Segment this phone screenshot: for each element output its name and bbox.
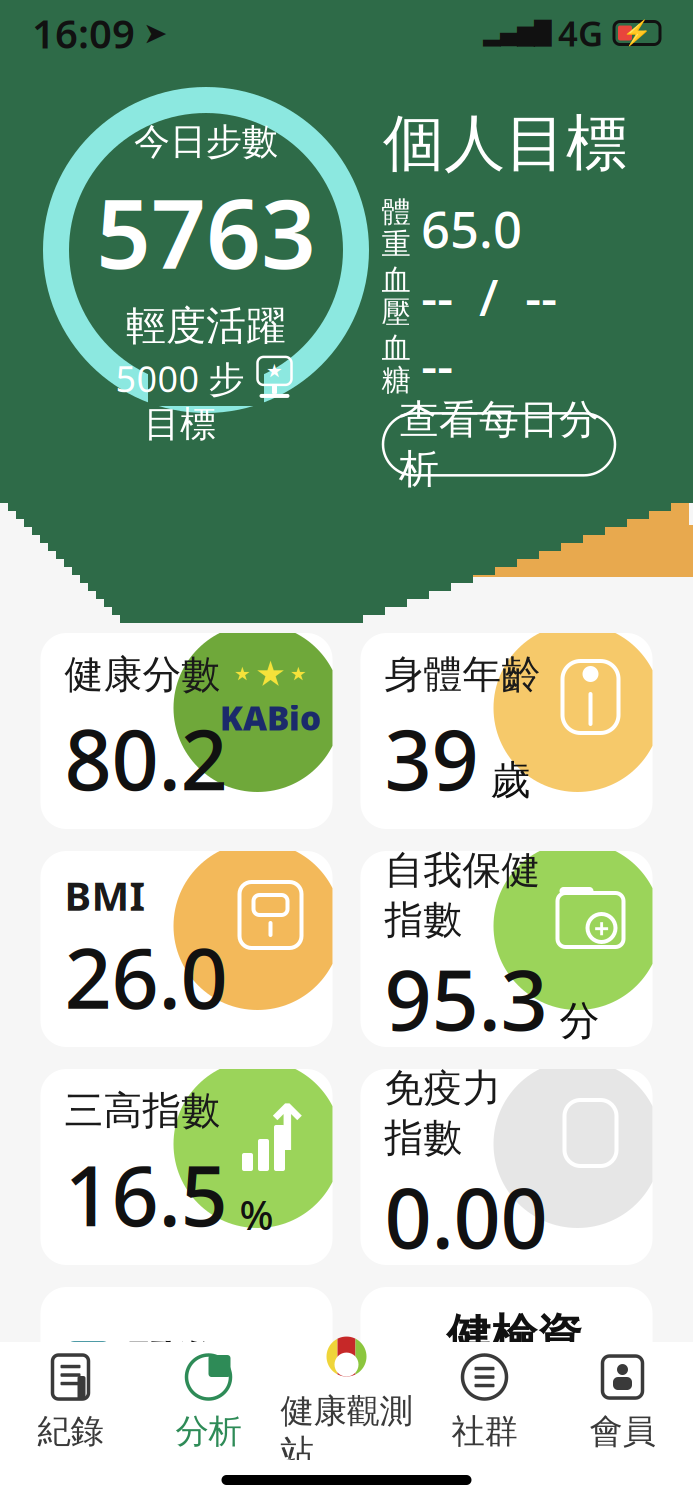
- staticText: 會員: [589, 1411, 655, 1452]
- staticText: %: [239, 1188, 273, 1241]
- staticText: 紀錄: [37, 1411, 103, 1452]
- staticText: 指數: [384, 896, 462, 944]
- staticText: 今日步數: [134, 120, 278, 164]
- staticText: 4G: [558, 10, 603, 56]
- button[interactable]: 問卷: [40, 1287, 332, 1397]
- staticText: 95.3: [384, 944, 547, 1053]
- staticText: ➤: [143, 16, 168, 50]
- staticText: 16:09: [32, 6, 135, 59]
- staticText: 糖: [381, 362, 410, 398]
- staticText: 免疫力: [384, 1065, 501, 1112]
- staticText: 80.2: [64, 703, 227, 813]
- button[interactable]: ★: [40, 633, 332, 829]
- staticText: ★: [266, 360, 283, 381]
- staticText: 16.5: [64, 1139, 227, 1249]
- staticText: 身體年齡: [384, 651, 540, 698]
- staticText: ⚡: [622, 19, 652, 47]
- button[interactable]: 會員: [553, 1342, 691, 1460]
- staticText: --: [421, 331, 453, 398]
- staticText: 0.00: [384, 1162, 547, 1271]
- button[interactable]: 免疫力: [360, 1069, 652, 1265]
- staticText: ★: [234, 663, 251, 684]
- staticText: 26.0: [64, 922, 227, 1031]
- button[interactable]: 身體年齡: [360, 633, 652, 829]
- staticText: 65.0: [421, 195, 522, 262]
- button[interactable]: +: [360, 851, 652, 1047]
- staticText: 5763: [96, 168, 316, 295]
- staticText: 三高指數: [64, 1087, 220, 1134]
- staticText: 個人目標: [383, 106, 627, 181]
- staticText: 輕度活躍: [126, 301, 286, 350]
- button[interactable]: BMI: [40, 851, 332, 1047]
- button[interactable]: 紀錄: [1, 1342, 139, 1460]
- staticText: 5000 步: [115, 354, 244, 402]
- staticText: +: [594, 910, 609, 946]
- staticText: 健檢資料: [446, 1308, 581, 1420]
- button[interactable]: 分析: [139, 1342, 277, 1460]
- staticText: 查看每日分析: [399, 395, 599, 493]
- staticText: 歲: [490, 756, 530, 805]
- staticText: 健康分數: [64, 651, 220, 698]
- button[interactable]: 查看每日分析: [383, 413, 615, 475]
- staticText: ★: [255, 654, 286, 693]
- staticText: 分析: [175, 1411, 241, 1452]
- staticText: BMI: [64, 869, 145, 922]
- button[interactable]: 健檢資料: [360, 1287, 652, 1397]
- staticText: ★: [290, 663, 307, 684]
- staticText: ↑: [260, 1092, 314, 1164]
- staticText: ›: [612, 1332, 628, 1396]
- staticText: 血: [381, 262, 410, 298]
- staticText: 自我保健: [384, 847, 540, 894]
- staticText: 重: [381, 226, 410, 262]
- button[interactable]: ↑: [40, 1069, 332, 1265]
- staticText: 指數: [384, 1114, 462, 1162]
- staticText: -- / --: [421, 263, 557, 330]
- staticText: 39: [384, 703, 478, 813]
- staticText: 目標: [144, 402, 216, 446]
- button[interactable]: 健康觀測站: [277, 1342, 415, 1460]
- staticText: KABio: [220, 695, 321, 740]
- staticText: 健康觀測站: [280, 1391, 412, 1472]
- staticText: 社群: [451, 1411, 517, 1452]
- button[interactable]: 社群: [415, 1342, 553, 1460]
- staticText: 問卷: [126, 1336, 216, 1392]
- staticText: 血: [381, 330, 410, 366]
- staticText: 體: [381, 194, 410, 230]
- staticText: ▂▄▆█: [483, 20, 551, 46]
- staticText: 壓: [381, 294, 410, 330]
- staticText: 分: [559, 996, 599, 1045]
